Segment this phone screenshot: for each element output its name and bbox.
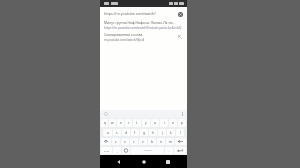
staticText: v [142, 140, 144, 144]
button[interactable]: j [158, 129, 166, 136]
button[interactable]: x [121, 138, 129, 145]
button[interactable]: f [131, 129, 139, 136]
staticText: g [143, 131, 145, 135]
staticText: q [104, 121, 106, 125]
button[interactable]: Shift [101, 138, 111, 145]
staticText: English [144, 149, 152, 152]
button[interactable]: v [139, 138, 147, 145]
button[interactable]: m [166, 138, 174, 145]
button[interactable]: Voice input [104, 112, 108, 116]
staticText: l [180, 131, 181, 135]
button[interactable]: c [130, 138, 138, 145]
staticText: k [170, 131, 172, 135]
button[interactable]: Home [139, 157, 149, 167]
staticText: t [136, 121, 138, 125]
button[interactable]: . [165, 147, 173, 154]
staticText: a [107, 131, 109, 135]
staticText: https://m.youtube.com/watch?feature=yout… [104, 11, 175, 16]
button[interactable]: Recent apps [163, 157, 173, 167]
button[interactable]: Clear text [177, 11, 183, 17]
staticText: r [128, 121, 130, 125]
staticText: https://m.youtube.com/watch?feature=yout… [104, 26, 182, 30]
button[interactable]: r [125, 119, 132, 127]
button[interactable]: y [142, 119, 150, 127]
button[interactable]: t [133, 119, 141, 127]
button[interactable]: Скопированная ссылка [100, 31, 187, 43]
button[interactable]: u [151, 119, 159, 127]
button[interactable]: d [122, 129, 130, 136]
button[interactable]: Минус группа Наф-Нафыча: Ласкал-Ла по... [100, 19, 187, 31]
button[interactable]: o [169, 119, 177, 127]
button[interactable]: Space [131, 147, 164, 154]
staticText: x [124, 140, 126, 144]
button[interactable]: e [117, 119, 124, 127]
staticText: y [145, 121, 147, 125]
staticText: o [172, 121, 174, 125]
staticText: u [154, 121, 156, 125]
button[interactable]: Enter [174, 147, 186, 154]
staticText: . [169, 149, 170, 153]
staticText: j [162, 131, 163, 135]
button[interactable]: z [112, 138, 120, 145]
button[interactable]: n [157, 138, 165, 145]
staticText: w [111, 121, 114, 125]
staticText: , [117, 149, 118, 153]
staticText: s [116, 131, 118, 135]
staticText: z [115, 140, 117, 144]
staticText: b [151, 140, 153, 144]
button[interactable]: Insert suggestion [177, 34, 183, 40]
staticText: m.youtube.com/watch/fkjsdl [104, 38, 145, 42]
button[interactable]: q [101, 119, 108, 127]
button[interactable]: https://m.youtube.com/watch?feature=yout… [100, 8, 187, 19]
staticText: f [134, 131, 136, 135]
staticText: ?123 [104, 149, 110, 152]
button[interactable]: Emoji [122, 147, 130, 154]
button[interactable]: i [160, 119, 168, 127]
staticText: Минус группа Наф-Нафыча: Ласкал-Ла по... [104, 20, 176, 25]
button[interactable]: ?123 [101, 147, 112, 154]
button[interactable]: a [103, 129, 112, 136]
button[interactable]: Backspace [175, 138, 186, 145]
staticText: e [120, 121, 122, 125]
button[interactable]: h [149, 129, 157, 136]
staticText: h [152, 131, 154, 135]
button[interactable]: Back [114, 157, 124, 167]
button[interactable]: , [113, 147, 121, 154]
button[interactable]: s [113, 129, 121, 136]
staticText: m [169, 140, 172, 144]
button[interactable]: p [178, 119, 186, 127]
button[interactable]: g [140, 129, 148, 136]
button[interactable]: l [176, 129, 184, 136]
staticText: i [164, 121, 165, 125]
button[interactable]: w [109, 119, 116, 127]
button[interactable]: b [148, 138, 156, 145]
staticText: d [125, 131, 127, 135]
button[interactable]: k [167, 129, 175, 136]
staticText: c [133, 140, 135, 144]
staticText: Скопированная ссылка [104, 32, 143, 37]
staticText: p [181, 121, 183, 125]
staticText: n [160, 140, 162, 144]
